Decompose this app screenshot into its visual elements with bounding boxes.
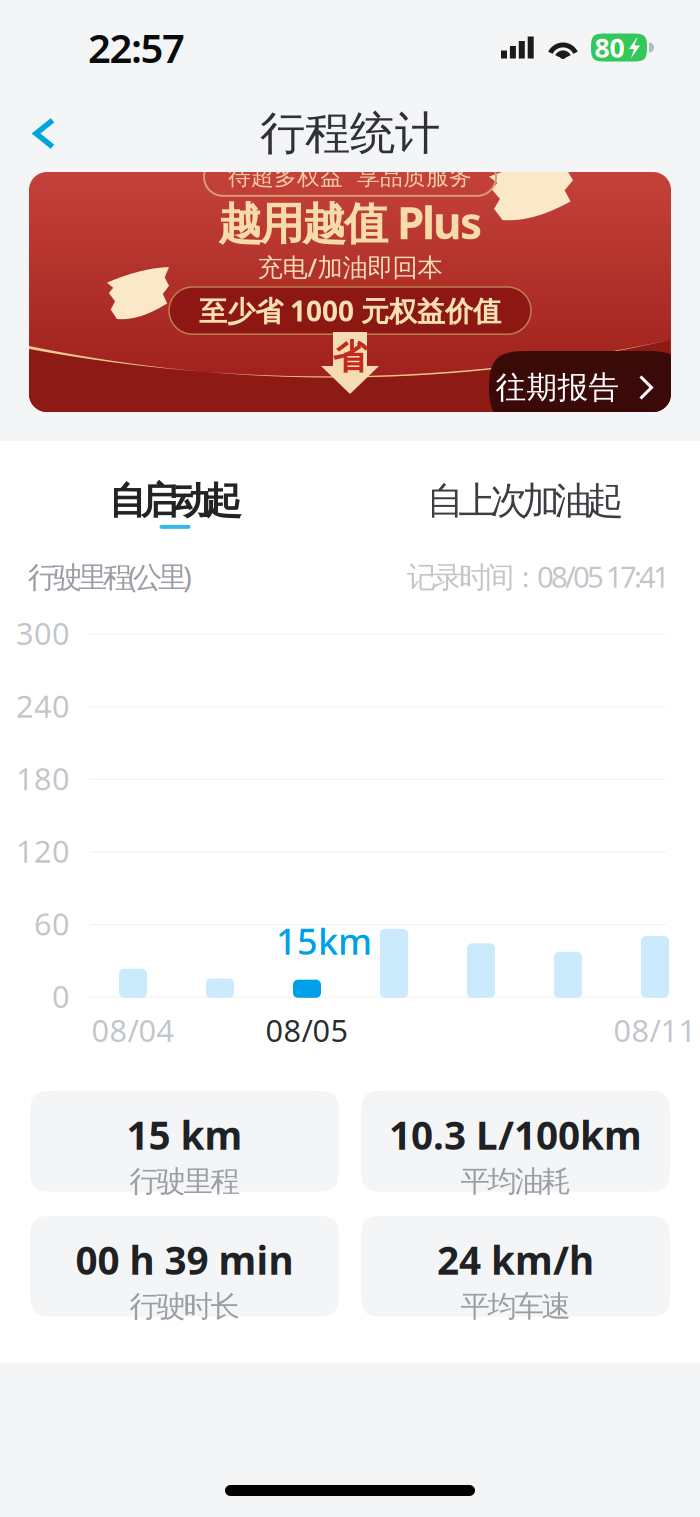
staticText: 待超多权益 享品质服务 bbox=[228, 163, 472, 191]
staticText: 往期报告 bbox=[495, 369, 619, 406]
staticText: 越用越值 Plus bbox=[218, 193, 482, 251]
staticText: 60 bbox=[34, 903, 70, 944]
staticText: 行驶里程(公里) bbox=[28, 557, 192, 596]
staticText: 10.3 L/100km bbox=[389, 1109, 642, 1160]
staticText: 0 bbox=[52, 976, 70, 1016]
staticText: 15 km bbox=[126, 1109, 242, 1160]
staticText: 平均油耗 bbox=[460, 1163, 570, 1199]
staticText: 24 km/h bbox=[437, 1234, 594, 1285]
staticText: 省 bbox=[332, 336, 367, 378]
staticText: 行程统计 bbox=[260, 106, 440, 161]
staticText: 80 bbox=[594, 30, 624, 65]
staticText: 22:57 bbox=[88, 21, 185, 74]
staticText: 240 bbox=[16, 685, 70, 726]
staticText: 自上次加油起 bbox=[426, 478, 623, 524]
staticText: 08/05 bbox=[265, 1010, 348, 1050]
staticText: 15km bbox=[276, 917, 372, 965]
staticText: 平均车速 bbox=[460, 1288, 570, 1324]
staticText: 充电/加油即回本 bbox=[257, 250, 442, 284]
button[interactable]: 自启动起 bbox=[0, 468, 350, 538]
staticText: 自启动起 bbox=[108, 478, 241, 524]
button[interactable]: 自上次加油起 bbox=[350, 468, 700, 538]
staticText: 180 bbox=[16, 758, 70, 799]
staticText: 08/11 bbox=[613, 1010, 696, 1050]
staticText: 至少省 1000 元权益价值 bbox=[199, 292, 501, 329]
staticText: 行驶时长 bbox=[129, 1288, 239, 1324]
staticText: 00 h 39 min bbox=[75, 1234, 293, 1285]
button[interactable]: Back bbox=[0, 98, 81, 168]
button[interactable]: 往期报告 bbox=[475, 339, 671, 412]
staticText: 记录时间：08/05 17:41 bbox=[407, 557, 670, 596]
staticText: 120 bbox=[16, 831, 70, 871]
staticText: 08/04 bbox=[91, 1010, 174, 1050]
staticText: 300 bbox=[16, 613, 70, 653]
staticText: 行驶里程 bbox=[129, 1163, 239, 1199]
